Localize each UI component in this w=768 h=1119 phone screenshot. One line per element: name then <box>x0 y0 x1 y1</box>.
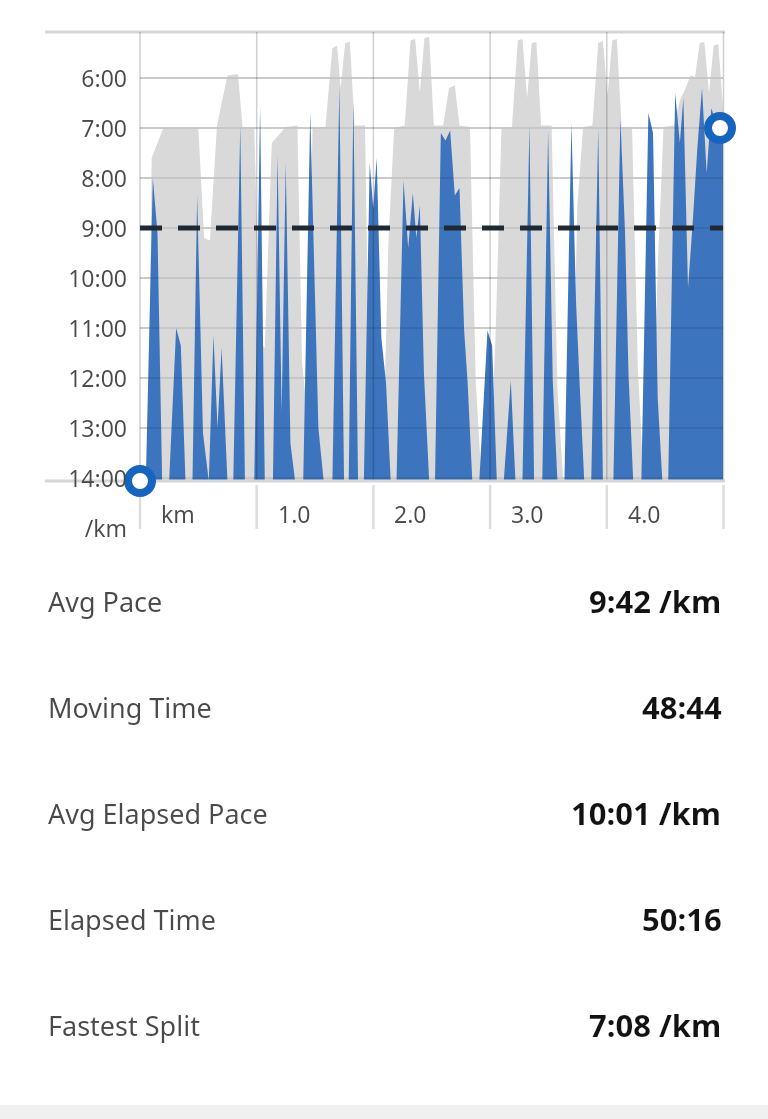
staticText: /km <box>34 512 127 543</box>
button[interactable]: Avg Pace <box>0 548 768 654</box>
staticText: 6:00 <box>34 62 127 93</box>
button[interactable]: Moving Time <box>0 654 768 760</box>
staticText: Elapsed Time <box>48 901 216 938</box>
staticText: 50:16 <box>642 898 722 940</box>
staticText: Moving Time <box>48 689 212 726</box>
staticText: 9:00 <box>34 212 127 243</box>
staticText: km <box>161 498 251 529</box>
staticText: 10:01 /km <box>571 792 722 834</box>
staticText: 2.0 <box>394 498 484 529</box>
button[interactable]: Avg Elapsed Pace <box>0 760 768 866</box>
staticText: 12:00 <box>34 362 127 393</box>
staticText: 48:44 <box>642 686 722 728</box>
button[interactable]: Fastest Split <box>0 972 768 1078</box>
staticText: 8:00 <box>34 162 127 193</box>
staticText: 7:08 /km <box>589 1004 722 1046</box>
staticText: 13:00 <box>34 412 127 443</box>
staticText: 3.0 <box>511 498 601 529</box>
staticText: 14:00 <box>34 462 127 493</box>
staticText: 4.0 <box>628 498 718 529</box>
button[interactable]: Elapsed Time <box>0 866 768 972</box>
staticText: 1.0 <box>278 498 368 529</box>
staticText: 11:00 <box>34 312 127 343</box>
staticText: 10:00 <box>34 262 127 293</box>
staticText: 9:42 /km <box>589 580 722 622</box>
staticText: Avg Elapsed Pace <box>48 795 268 832</box>
staticText: 7:00 <box>34 112 127 143</box>
staticText: Avg Pace <box>48 583 163 620</box>
staticText: Fastest Split <box>48 1007 200 1044</box>
